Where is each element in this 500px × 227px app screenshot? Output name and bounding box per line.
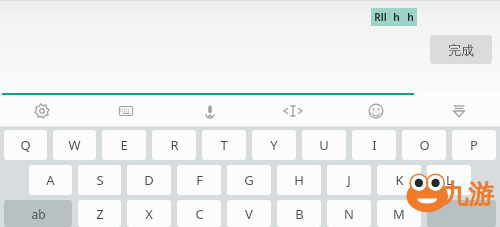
button[interactable]: T — [202, 130, 246, 160]
button[interactable]: K — [377, 165, 421, 195]
button[interactable]: R — [152, 130, 196, 160]
button[interactable]: Move cursor — [251, 96, 334, 126]
button[interactable]: N — [327, 200, 371, 227]
button[interactable]: Delete — [427, 200, 496, 227]
staticText: U — [319, 136, 329, 154]
staticText: B — [295, 205, 304, 223]
button[interactable]: P — [452, 130, 496, 160]
button[interactable]: X — [127, 200, 171, 227]
button[interactable]: ab — [4, 200, 72, 227]
button[interactable]: A — [29, 165, 72, 195]
staticText: P — [470, 136, 478, 154]
button[interactable]: O — [402, 130, 446, 160]
staticText: ab — [31, 206, 46, 222]
staticText: Y — [270, 136, 278, 154]
button[interactable]: L — [427, 165, 471, 195]
staticText: Rll — [374, 10, 387, 24]
button[interactable]: D — [127, 165, 171, 195]
button[interactable]: B — [277, 200, 321, 227]
staticText: h — [393, 10, 400, 24]
button[interactable]: S — [78, 165, 121, 195]
staticText: R — [170, 136, 179, 154]
button[interactable]: Settings — [0, 96, 84, 126]
button[interactable]: Z — [78, 200, 121, 227]
staticText: M — [393, 205, 405, 223]
staticText: S — [96, 171, 104, 189]
button[interactable]: 完成 — [430, 35, 492, 64]
staticText: 九游 — [442, 178, 494, 211]
button[interactable]: Rll — [374, 8, 414, 26]
staticText: K — [395, 171, 404, 189]
staticText: I — [372, 136, 377, 154]
button[interactable]: H — [277, 165, 321, 195]
button[interactable]: G — [227, 165, 271, 195]
button[interactable]: V — [227, 200, 271, 227]
button[interactable]: M — [377, 200, 421, 227]
staticText: J — [347, 171, 351, 189]
staticText: h — [407, 10, 414, 24]
staticText: C — [195, 205, 204, 223]
staticText: Z — [96, 205, 104, 223]
staticText: X — [145, 205, 153, 223]
staticText: O — [419, 136, 430, 154]
button[interactable]: Voice input — [168, 96, 251, 126]
button[interactable]: Switch keyboard — [84, 96, 168, 126]
staticText: N — [344, 205, 354, 223]
button[interactable]: Emoji — [334, 96, 417, 126]
staticText: G — [244, 171, 254, 189]
button[interactable]: F — [177, 165, 221, 195]
staticText: 完成 — [448, 42, 474, 58]
staticText: Q — [20, 136, 31, 154]
button[interactable]: W — [53, 130, 96, 160]
staticText: D — [144, 171, 154, 189]
staticText: H — [294, 171, 304, 189]
button[interactable]: C — [177, 200, 221, 227]
staticText: T — [220, 136, 228, 154]
button[interactable]: Y — [252, 130, 296, 160]
staticText: A — [46, 171, 55, 189]
staticText: L — [446, 171, 453, 189]
button[interactable]: U — [302, 130, 346, 160]
button[interactable]: I — [352, 130, 396, 160]
staticText: E — [120, 136, 128, 154]
staticText: V — [245, 205, 253, 223]
staticText: F — [196, 171, 203, 189]
button[interactable]: Hide keyboard — [417, 96, 500, 126]
button[interactable]: Q — [4, 130, 47, 160]
button[interactable]: J — [327, 165, 371, 195]
staticText: W — [68, 136, 81, 154]
button[interactable]: E — [102, 130, 146, 160]
